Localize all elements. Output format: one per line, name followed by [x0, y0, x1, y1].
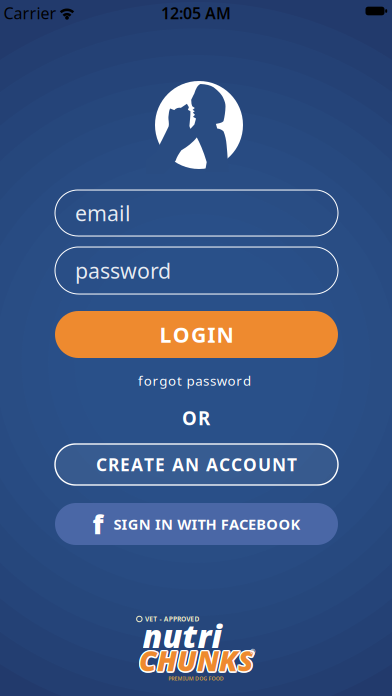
staticText: CHUNKS [140, 641, 254, 678]
staticText: N [272, 453, 286, 476]
staticText: P [168, 675, 171, 682]
staticText: C [239, 514, 248, 534]
staticText: o [227, 372, 235, 389]
staticText: O [243, 453, 257, 476]
staticText: N [139, 514, 151, 534]
staticText: f [138, 372, 143, 389]
staticText: O [212, 675, 216, 682]
staticText: CHUNKS [138, 642, 252, 679]
staticText: A [131, 453, 143, 476]
staticText: s [203, 372, 209, 389]
staticText: O [216, 675, 220, 682]
button[interactable]: password [55, 247, 338, 294]
staticText [207, 675, 208, 682]
staticText: T [197, 514, 205, 534]
staticText: A [229, 514, 239, 534]
staticText: CHUNKS [139, 642, 253, 679]
staticText: C [231, 453, 242, 476]
staticText: A [164, 615, 169, 623]
staticText: O [278, 514, 290, 534]
staticText: I [122, 514, 128, 534]
staticText: R [108, 453, 119, 476]
staticText: O [181, 615, 186, 623]
staticText: F [221, 514, 229, 534]
staticText: N [185, 453, 199, 476]
staticText: E [248, 514, 256, 534]
staticText: O [182, 406, 197, 430]
staticText: CHUNKS [139, 643, 253, 680]
staticText: R [198, 406, 210, 430]
button[interactable]: L [55, 311, 338, 358]
staticText: F [208, 675, 211, 682]
staticText: - [159, 615, 161, 623]
button[interactable]: C [55, 444, 338, 485]
staticText: T [153, 615, 157, 623]
staticText: U [258, 453, 271, 476]
staticText: C [96, 453, 107, 476]
staticText: L [159, 320, 171, 349]
staticText: T [287, 453, 297, 476]
staticText: E [190, 615, 194, 623]
staticText: C [219, 453, 230, 476]
staticText: G [203, 675, 207, 682]
staticText: p [186, 372, 194, 389]
staticText: CHUNKS [138, 641, 252, 678]
staticText: E [155, 453, 165, 476]
staticText: U [185, 675, 189, 682]
staticText: CHUNKS [140, 643, 254, 680]
staticText: M [189, 675, 194, 682]
staticText: I [207, 320, 215, 349]
staticText: N [217, 320, 234, 349]
staticText: V [145, 615, 149, 623]
staticText: nutri [142, 614, 221, 657]
staticText: S [113, 514, 121, 534]
staticText: a [195, 372, 202, 389]
staticText: Carrier [3, 2, 56, 24]
button[interactable]: f [138, 372, 251, 389]
staticText: N [161, 514, 173, 534]
staticText: G [191, 320, 206, 349]
staticText: A [206, 453, 218, 476]
staticText: ® [250, 648, 256, 656]
staticText: H [206, 514, 217, 534]
staticText [157, 615, 159, 623]
staticText: password [75, 256, 171, 285]
staticText: P [169, 615, 173, 623]
staticText: D [194, 615, 199, 623]
staticText: o [168, 372, 176, 389]
staticText: 12:05 AM [161, 2, 231, 24]
staticText: G [128, 514, 139, 534]
staticText: I [183, 675, 185, 682]
staticText: CHUNKS [138, 643, 252, 680]
staticText: CHUNKS [140, 642, 254, 679]
staticText: O [173, 320, 190, 349]
button[interactable]: email [55, 190, 338, 236]
staticText: E [120, 453, 130, 476]
staticText: t [177, 372, 182, 389]
staticText: B [256, 514, 266, 534]
staticText: D [220, 675, 224, 682]
staticText: I [191, 514, 197, 534]
staticText: P [173, 615, 177, 623]
staticText: I [155, 514, 161, 534]
button[interactable]: f [55, 503, 338, 545]
staticText: T [144, 453, 154, 476]
staticText: email [75, 199, 131, 227]
staticText: r [236, 372, 242, 389]
staticText: A [172, 453, 184, 476]
staticText: R [171, 675, 174, 682]
staticText: r [152, 372, 158, 389]
staticText: O [199, 675, 203, 682]
staticText: w [217, 372, 227, 389]
staticText: W [177, 514, 191, 534]
staticText: f [92, 506, 103, 542]
staticText: O [266, 514, 278, 534]
staticText: g [159, 372, 167, 389]
